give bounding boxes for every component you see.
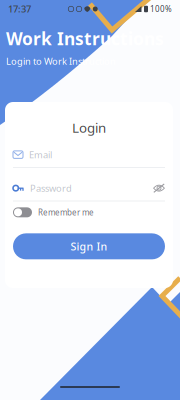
staticText: Login — [72, 119, 106, 136]
staticText: Work Instructions — [6, 27, 164, 50]
staticText: Sign In — [70, 239, 107, 253]
staticText: 17:37 — [8, 3, 31, 15]
staticText: Login to Work Instruction — [6, 55, 116, 67]
staticText: Email — [29, 148, 52, 161]
button[interactable]: Remember me — [13, 201, 165, 223]
staticText: Password — [30, 182, 72, 194]
staticText: 100% — [150, 4, 172, 14]
staticText: Remember me — [38, 207, 94, 218]
button[interactable]: Sign In — [13, 233, 165, 259]
